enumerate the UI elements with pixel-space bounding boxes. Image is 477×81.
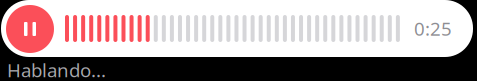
button[interactable]: Hablando... xyxy=(0,0,477,81)
staticText: Hablando... xyxy=(7,58,106,81)
staticText: 0:25 xyxy=(414,16,452,41)
button[interactable]: Pause xyxy=(0,0,477,81)
